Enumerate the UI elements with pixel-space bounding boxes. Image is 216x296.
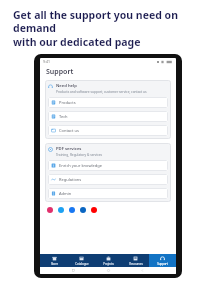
button[interactable]: LinkedIn	[80, 207, 86, 213]
button[interactable]: Projects	[95, 254, 122, 267]
button[interactable]: Resources	[122, 254, 149, 267]
staticText: Admin	[59, 191, 72, 196]
staticText: Resources	[129, 262, 143, 266]
staticText: Catalogue	[75, 262, 89, 266]
staticText: Tech	[59, 114, 68, 119]
staticText: Store	[51, 262, 58, 266]
staticText: Get all the support you need on demand	[13, 8, 206, 35]
staticText: Projects	[103, 262, 114, 266]
staticText: Contact us	[59, 128, 79, 133]
staticText: Enrich your knowledge	[59, 163, 102, 168]
staticText: Need help	[56, 83, 77, 89]
button[interactable]: Instagram	[47, 207, 53, 213]
button[interactable]: Twitter	[58, 207, 64, 213]
staticText: Support	[46, 67, 74, 77]
button[interactable]: Catalogue	[68, 254, 95, 267]
staticText: 9:41	[43, 59, 50, 64]
button[interactable]: Support	[149, 254, 176, 267]
staticText: Support	[157, 262, 168, 266]
staticText: with our dedicated page	[13, 35, 141, 49]
staticText: Products	[59, 100, 76, 105]
button[interactable]: Tech	[48, 111, 168, 122]
button[interactable]: Products	[48, 97, 168, 108]
button[interactable]: Contact us	[48, 125, 168, 136]
staticText: Regulations	[59, 177, 82, 182]
staticText: PDF services	[56, 146, 82, 152]
button[interactable]: Admin	[48, 188, 168, 199]
staticText: Products and software support, customer …	[56, 90, 147, 94]
button[interactable]: Facebook	[69, 207, 75, 213]
button[interactable]: Regulations	[48, 174, 168, 185]
button[interactable]: YouTube	[91, 207, 97, 213]
staticText: Training, Regulatory & services	[56, 153, 103, 157]
button[interactable]: Store	[40, 254, 68, 267]
button[interactable]: Enrich your knowledge	[48, 160, 168, 171]
